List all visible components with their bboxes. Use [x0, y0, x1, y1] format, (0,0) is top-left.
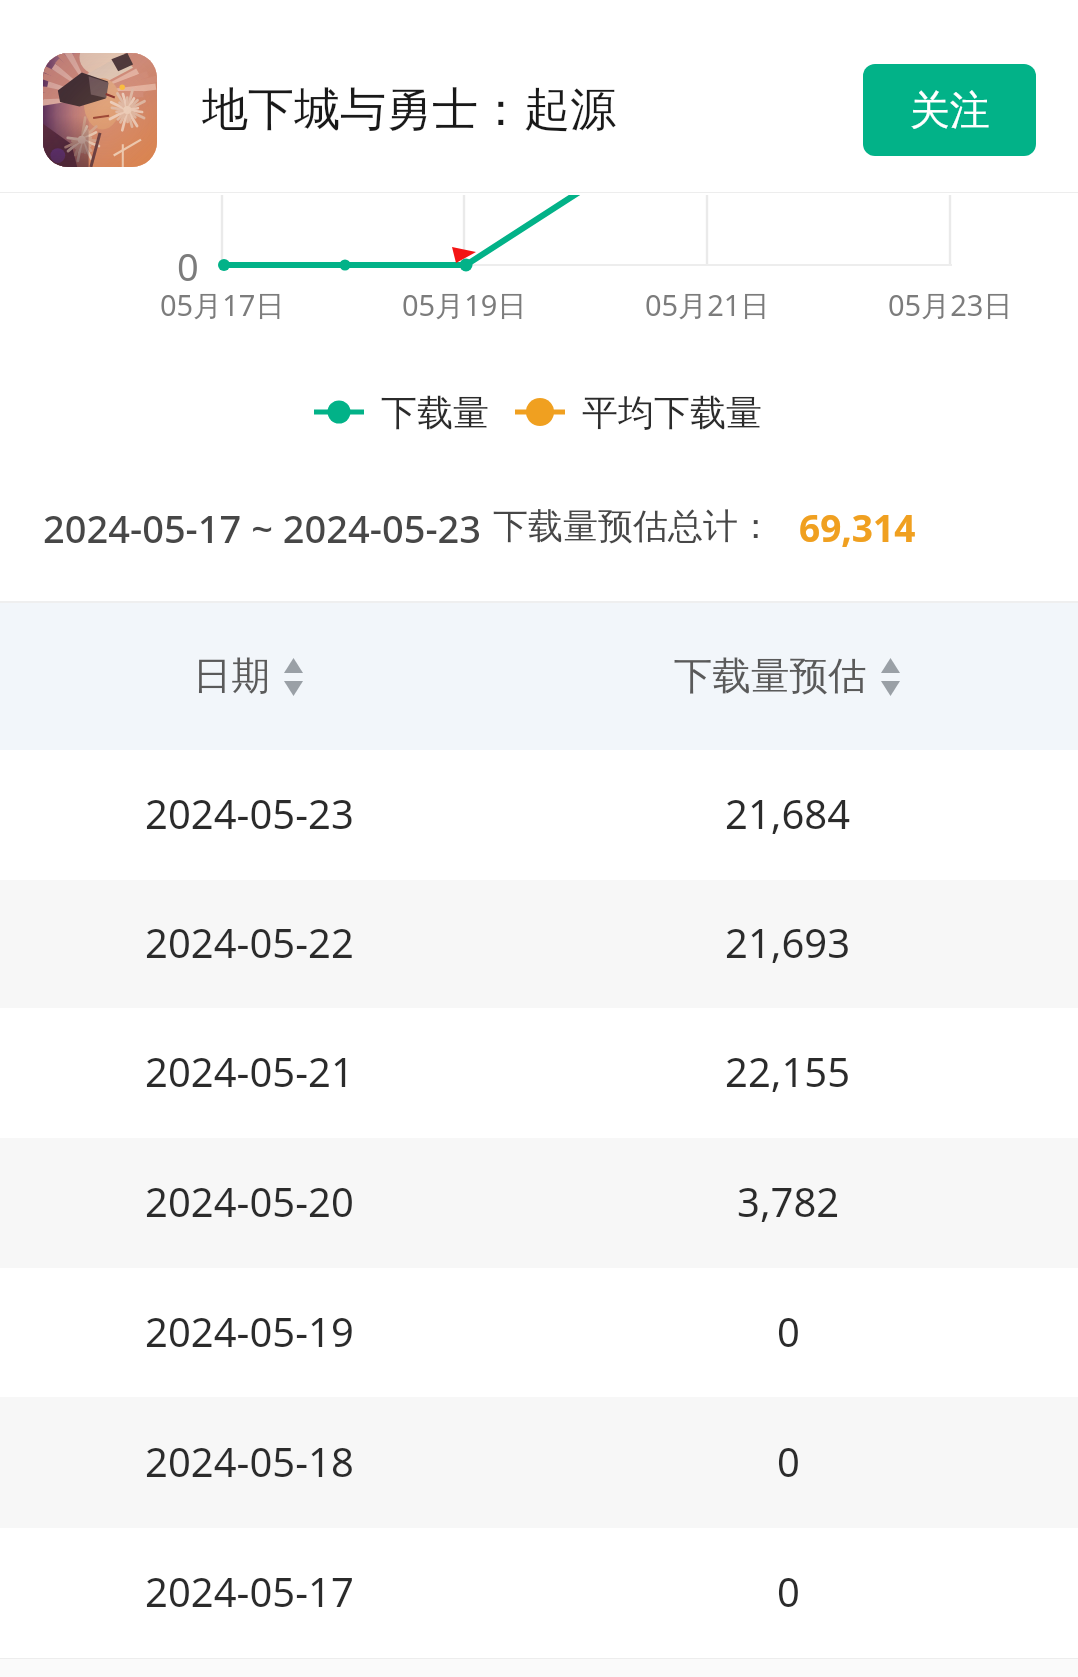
staticText: 下载量 [381, 390, 489, 435]
staticText: 2024-05-18 [145, 1434, 354, 1488]
button[interactable]: 2024-05-18 [0, 1397, 1078, 1528]
button[interactable]: 2024-05-22 [0, 880, 1078, 1008]
button[interactable]: 平均下载量 [515, 389, 762, 435]
button[interactable]: 2024-05-20 [0, 1138, 1078, 1268]
staticText: 下载量预估总计： [493, 504, 773, 548]
button[interactable]: 2024-05-23 [0, 750, 1078, 880]
staticText: 05月19日 [402, 285, 527, 325]
staticText: 2024-05-23 [145, 786, 354, 840]
staticText: 05月21日 [645, 285, 770, 325]
button[interactable]: 下载量 [314, 389, 489, 435]
staticText: 3,782 [737, 1174, 840, 1228]
button[interactable]: 2024-05-19 [0, 1268, 1078, 1397]
staticText: 地下城与勇士：起源 [202, 81, 616, 139]
staticText: 22,155 [725, 1044, 851, 1098]
staticText: 下载量预估 [674, 652, 867, 701]
button[interactable]: 下载量预估 [587, 603, 987, 750]
staticText: 2024-05-20 [145, 1174, 354, 1228]
staticText: 0 [777, 1304, 800, 1358]
button[interactable]: 关注 [863, 64, 1036, 156]
other: 地下城与勇士：起源 游戏图标 [43, 53, 157, 167]
staticText: 2024-05-21 [145, 1044, 354, 1098]
staticText: 平均下载量 [582, 390, 762, 435]
staticText: 2024-05-17 ~ 2024-05-23 [43, 502, 482, 550]
staticText: 2024-05-17 [145, 1564, 354, 1618]
button[interactable]: 地下城与勇士：起源 游戏图标 [0, 0, 660, 192]
staticText: 2024-05-19 [145, 1304, 354, 1358]
staticText: 05月23日 [888, 285, 1013, 325]
staticText: 2024-05-22 [145, 915, 354, 969]
staticText: 05月17日 [160, 285, 285, 325]
button[interactable]: 日期 [48, 603, 448, 750]
staticText: 69,314 [799, 502, 916, 550]
staticText: 21,684 [725, 786, 851, 840]
staticText: 0 [777, 1434, 800, 1488]
staticText: 21,693 [725, 915, 851, 969]
staticText: 关注 [910, 85, 990, 135]
staticText: 日期 [193, 652, 270, 701]
staticText: 0 [777, 1564, 800, 1618]
button[interactable]: 2024-05-21 [0, 1008, 1078, 1138]
staticText: 0 [177, 240, 199, 290]
button[interactable]: 2024-05-17 [0, 1528, 1078, 1658]
